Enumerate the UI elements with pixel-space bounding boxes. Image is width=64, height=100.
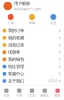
button[interactable]: 我的订单 — [0, 27, 64, 34]
staticText: 优惠券 — [8, 49, 20, 55]
button[interactable]: 我的 — [51, 89, 64, 97]
staticText: 我的 — [55, 94, 61, 97]
staticText: 关于我们 — [8, 78, 24, 84]
button[interactable]: 我的收藏 — [0, 34, 64, 41]
button[interactable]: 浏览记录 — [0, 41, 64, 49]
staticText: 地址管理 — [8, 64, 24, 69]
button[interactable]: 分类 — [13, 89, 26, 97]
staticText: 客服中心 — [8, 71, 24, 76]
staticText: 我的钱包 — [8, 57, 24, 62]
staticText: 首页 — [3, 94, 9, 97]
button[interactable]: 关于我们 — [0, 77, 64, 85]
staticText: 用户昵称 — [14, 1, 30, 6]
staticText: 订单 — [8, 21, 14, 25]
staticText: 我的收藏 — [8, 35, 24, 40]
staticText: 购物车 — [40, 94, 49, 97]
staticText: 我的订单 — [8, 28, 24, 33]
staticText: 查看并编辑个人资料 — [14, 7, 41, 11]
button[interactable]: 我的钱包 — [0, 56, 64, 63]
staticText: 浏览记录 — [8, 42, 24, 48]
button[interactable]: 发现 — [26, 89, 38, 97]
button[interactable]: 收藏 — [21, 14, 43, 25]
staticText: 收藏 — [29, 21, 35, 25]
button[interactable]: 购物车 — [38, 89, 51, 97]
button[interactable]: 订单 — [0, 14, 21, 25]
button[interactable]: 优惠券 — [0, 49, 64, 56]
button[interactable]: 首页 — [0, 89, 13, 97]
button[interactable]: 足迹 — [43, 14, 64, 25]
staticText: 分类 — [16, 94, 22, 97]
staticText: 发现 — [29, 94, 35, 97]
staticText: v1.0.0 — [48, 79, 57, 83]
button[interactable]: 地址管理 — [0, 63, 64, 70]
button[interactable]: 客服中心 — [0, 70, 64, 77]
staticText: 足迹 — [50, 21, 56, 25]
